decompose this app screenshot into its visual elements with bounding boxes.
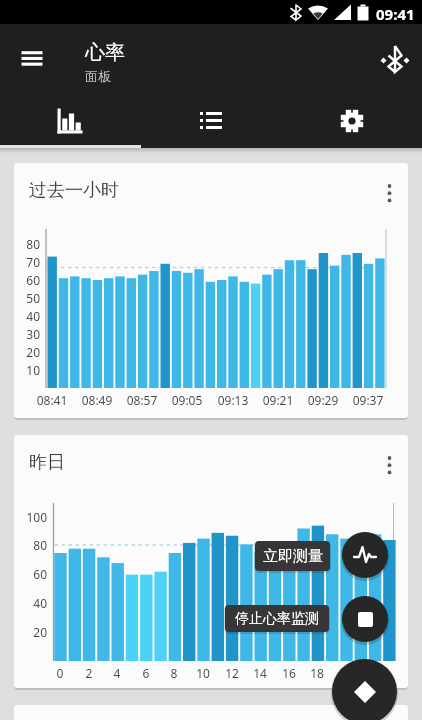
button[interactable]: 昨日 bbox=[14, 435, 408, 688]
staticText: 08:41 bbox=[28, 392, 76, 408]
staticText: 20 bbox=[14, 344, 40, 360]
staticText: 30 bbox=[14, 326, 40, 342]
staticText: 4 bbox=[93, 665, 141, 681]
staticText: 09:05 bbox=[163, 392, 211, 408]
staticText: 10 bbox=[14, 362, 40, 378]
staticText: 40 bbox=[14, 595, 47, 611]
staticText: 8 bbox=[150, 665, 198, 681]
staticText: 08:57 bbox=[118, 392, 166, 408]
staticText: 09:37 bbox=[344, 392, 392, 408]
staticText: 18 bbox=[293, 665, 341, 681]
button[interactable] bbox=[0, 96, 140, 145]
staticText: 09:41 bbox=[376, 4, 415, 24]
staticText: 16 bbox=[265, 665, 313, 681]
staticText: 08:49 bbox=[73, 392, 121, 408]
staticText: 2 bbox=[65, 665, 113, 681]
button[interactable] bbox=[342, 532, 388, 578]
staticText: 09:13 bbox=[209, 392, 257, 408]
staticText: 40 bbox=[14, 308, 40, 324]
staticText: 过去一小时 bbox=[29, 179, 119, 202]
staticText: 100 bbox=[14, 509, 47, 525]
staticText: 心率 bbox=[85, 40, 125, 65]
staticText: 09:29 bbox=[299, 392, 347, 408]
staticText: 50 bbox=[14, 290, 40, 306]
button[interactable] bbox=[354, 165, 398, 209]
staticText: 0 bbox=[36, 665, 84, 681]
button[interactable] bbox=[332, 659, 397, 720]
button[interactable] bbox=[141, 96, 281, 145]
button[interactable]: 立即测量 bbox=[255, 541, 330, 571]
staticText: 09:21 bbox=[254, 392, 302, 408]
staticText: 80 bbox=[14, 537, 47, 553]
button[interactable] bbox=[10, 36, 54, 80]
button[interactable] bbox=[354, 437, 398, 481]
staticText: 立即测量 bbox=[263, 547, 323, 566]
staticText: 20 bbox=[14, 624, 47, 640]
button[interactable]: 停止心率监测 bbox=[225, 605, 329, 632]
staticText: 6 bbox=[122, 665, 170, 681]
staticText: 面板 bbox=[85, 68, 111, 84]
staticText: 60 bbox=[14, 566, 47, 582]
staticText: 20 bbox=[322, 665, 370, 681]
staticText: 12 bbox=[208, 665, 256, 681]
staticText: 70 bbox=[14, 254, 40, 270]
staticText: 停止心率监测 bbox=[235, 610, 319, 628]
staticText: 10 bbox=[179, 665, 227, 681]
button[interactable] bbox=[282, 96, 422, 145]
button[interactable]: 过去一小时 bbox=[14, 163, 408, 418]
button[interactable] bbox=[342, 596, 388, 642]
staticText: 60 bbox=[14, 272, 40, 288]
button[interactable] bbox=[371, 35, 419, 83]
staticText: 80 bbox=[14, 236, 40, 252]
staticText: 14 bbox=[236, 665, 284, 681]
staticText: 昨日 bbox=[29, 451, 65, 474]
